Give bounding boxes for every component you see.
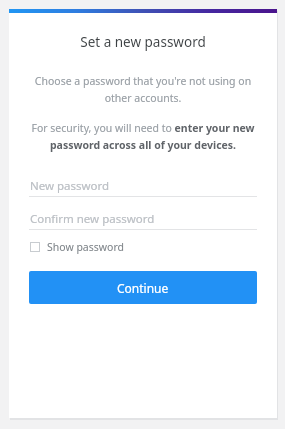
staticText: For security, you will need to enter you… (23, 121, 263, 152)
staticText: Show password (47, 240, 124, 254)
staticText: Confirm new password (30, 211, 155, 227)
button[interactable]: Continue (29, 271, 257, 304)
button[interactable]: Confirm new password (29, 208, 257, 230)
staticText: Choose a password that you're not using … (25, 74, 261, 105)
staticText: Continue (117, 280, 169, 296)
staticText: New password (30, 178, 110, 194)
button[interactable]: New password (29, 175, 257, 197)
button[interactable]: Show password (29, 238, 125, 256)
staticText: Set a new password (9, 33, 277, 51)
